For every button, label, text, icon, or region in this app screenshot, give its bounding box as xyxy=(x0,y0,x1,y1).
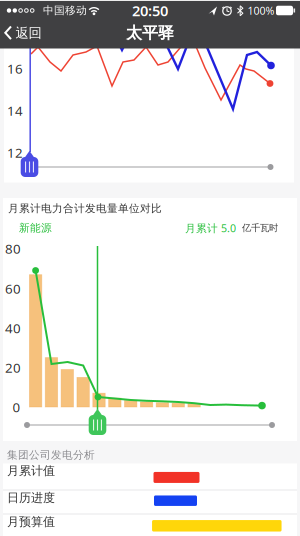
button[interactable]: 返回 xyxy=(4,18,41,48)
staticText: 新能源 xyxy=(19,221,52,234)
staticText: 16 xyxy=(7,60,23,77)
staticText: 40 xyxy=(5,319,21,337)
staticText: 60 xyxy=(5,280,21,297)
staticText: 0 xyxy=(12,398,20,416)
staticText: 亿千瓦时 xyxy=(242,222,278,234)
staticText: 月累计电力合计发电量单位对比 xyxy=(8,202,162,215)
button[interactable]: 月预算值 xyxy=(3,514,297,536)
staticText: 100% xyxy=(247,3,274,18)
staticText: 日历进度 xyxy=(7,490,55,505)
staticText: 中国移动 xyxy=(43,4,87,17)
staticText: 14 xyxy=(7,102,23,119)
staticText: 20 xyxy=(5,359,21,376)
staticText: 80 xyxy=(5,240,21,257)
staticText: 12 xyxy=(7,144,23,161)
staticText: 集团公司发电分析 xyxy=(7,448,95,461)
staticText: 月累计 5.0 xyxy=(185,221,236,235)
button[interactable]: 月累计值 xyxy=(3,463,297,489)
button[interactable] xyxy=(19,150,39,177)
staticText: 月累计值 xyxy=(7,463,55,478)
staticText: 20:50 xyxy=(132,1,168,20)
button[interactable]: 日历进度 xyxy=(3,490,297,514)
staticText: 太平驿 xyxy=(126,23,174,43)
button[interactable] xyxy=(87,408,107,435)
staticText: 返回 xyxy=(15,25,41,41)
staticText: 月预算值 xyxy=(7,514,55,529)
